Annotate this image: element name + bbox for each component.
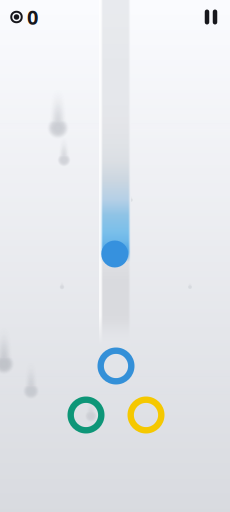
staticText: 0 — [27, 4, 38, 30]
button[interactable]: Coins collected — [10, 4, 52, 30]
button[interactable]: Pause — [196, 2, 226, 32]
